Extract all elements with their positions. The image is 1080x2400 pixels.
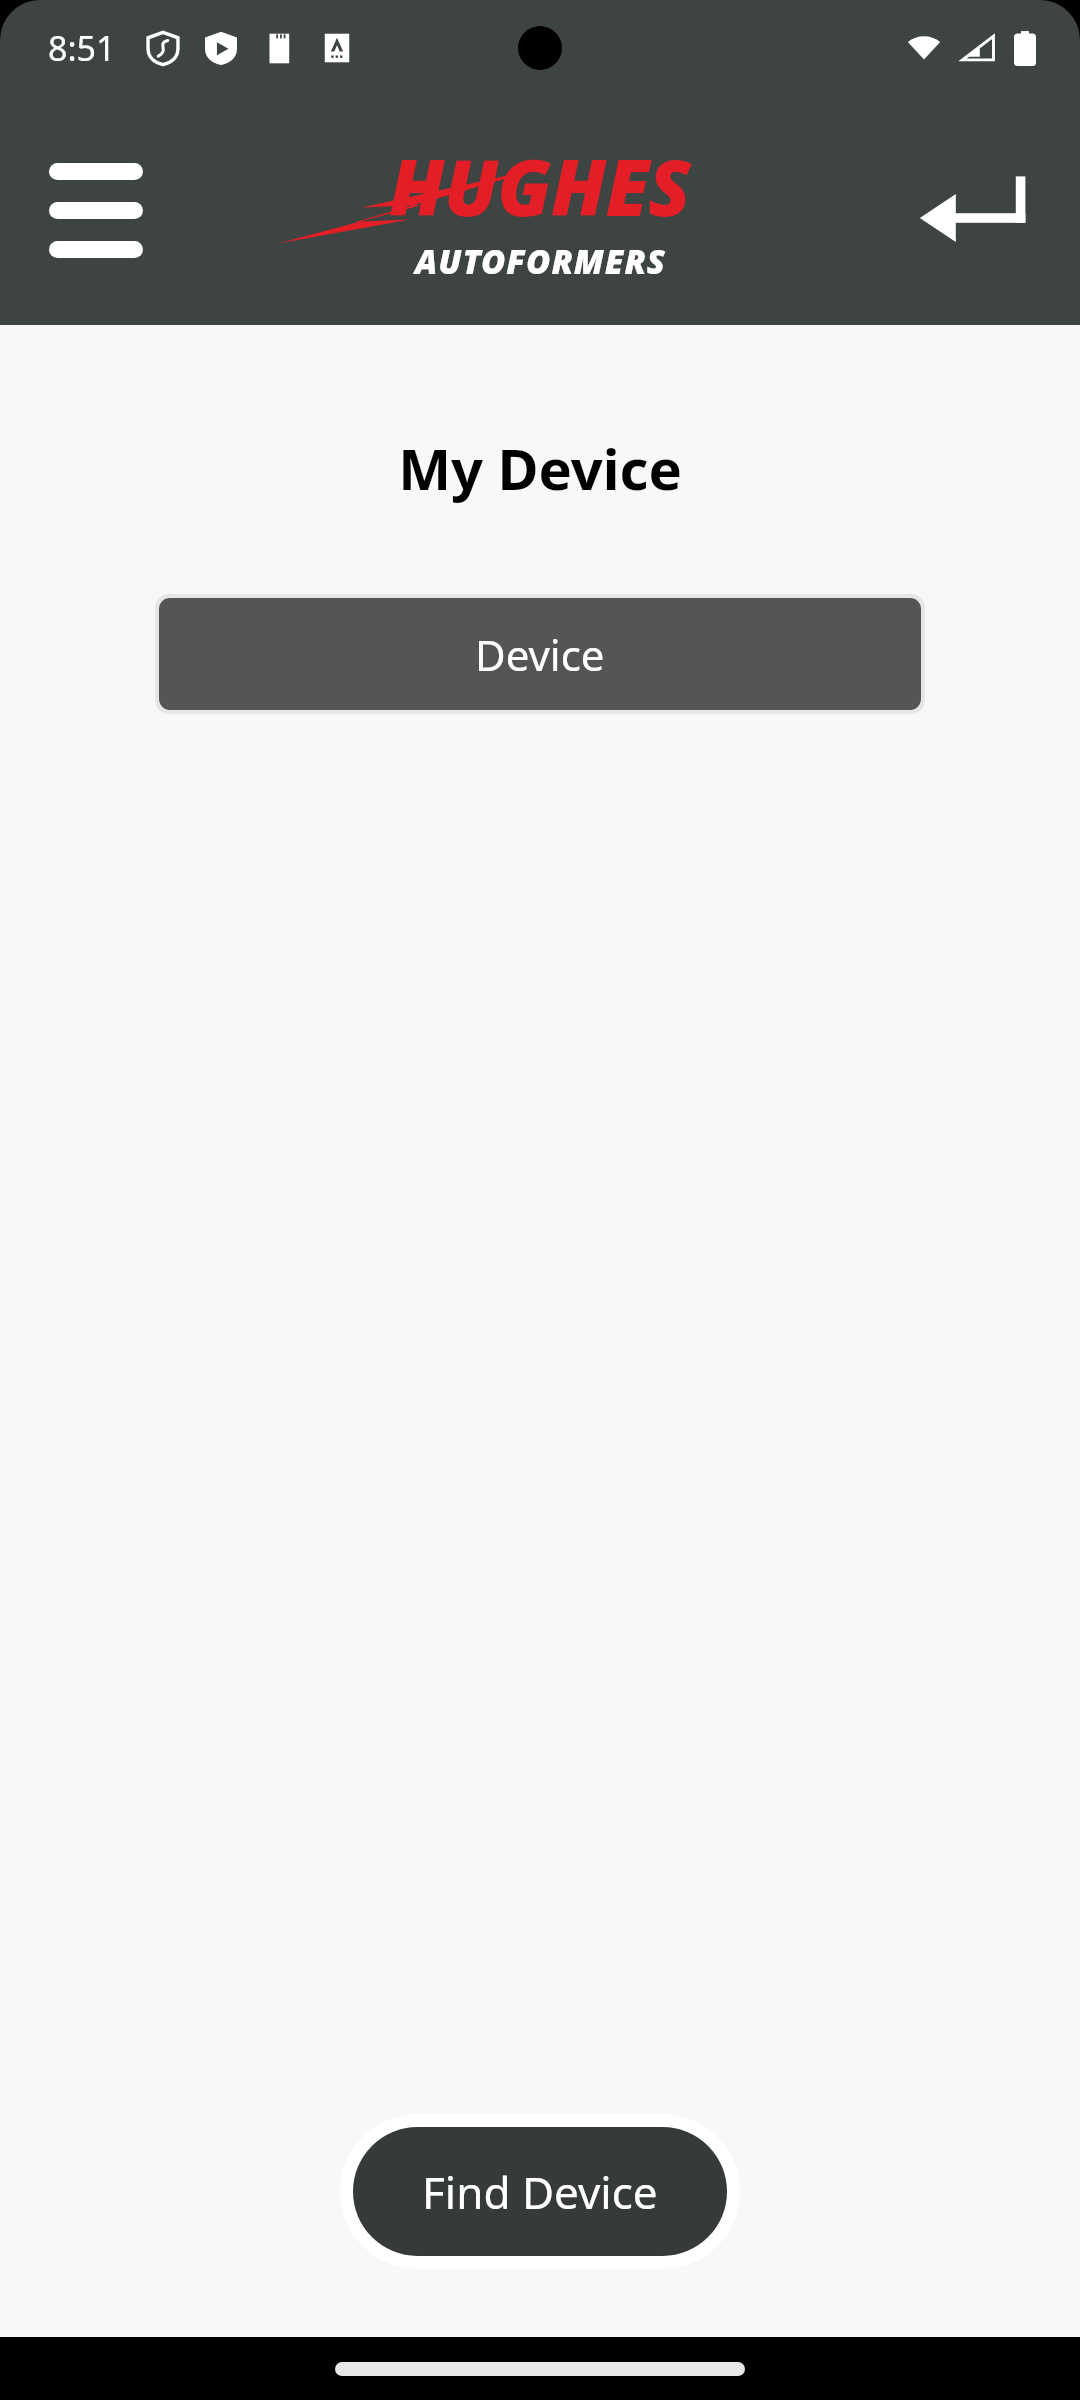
button[interactable]: Find Device xyxy=(353,2127,727,2256)
button[interactable]: Open navigation menu xyxy=(30,150,162,270)
button[interactable]: Device xyxy=(159,598,921,710)
staticText: AUTOFORMERS xyxy=(415,239,666,284)
staticText: HUGHES xyxy=(389,133,691,239)
staticText: 8:51 xyxy=(48,25,116,71)
staticText: Find Device xyxy=(422,2162,658,2222)
button[interactable]: Back xyxy=(900,150,1050,270)
staticText: Device xyxy=(475,626,605,683)
staticText: My Device xyxy=(398,430,682,506)
